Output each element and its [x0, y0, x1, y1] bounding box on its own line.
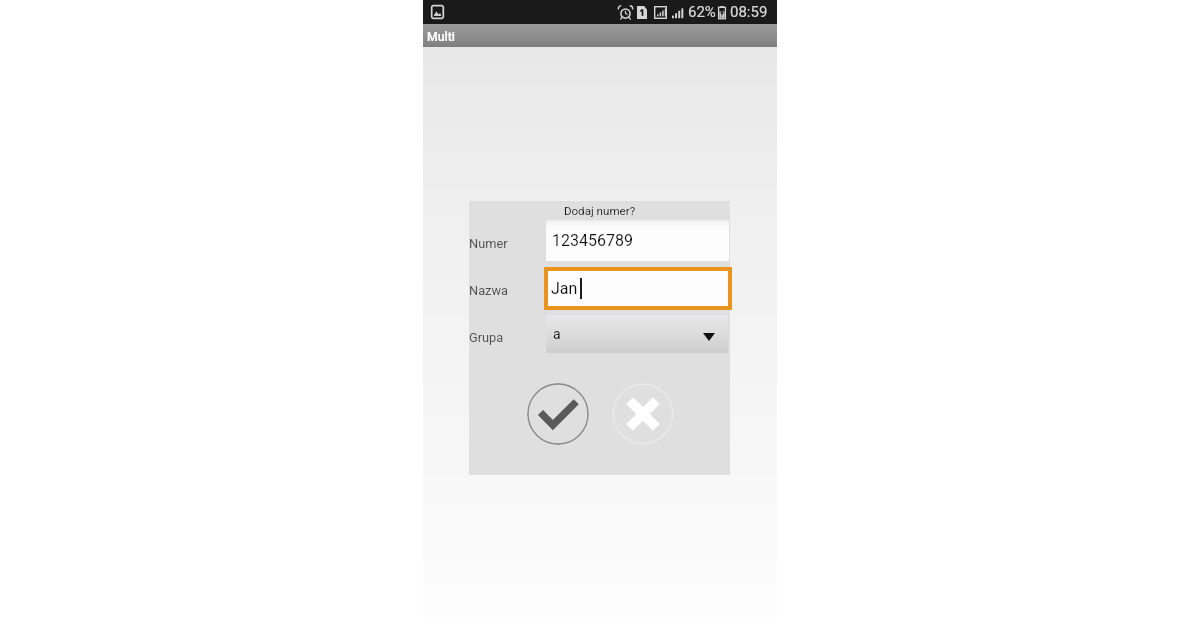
staticText: Jan: [551, 279, 578, 298]
button[interactable]: Accept: [527, 383, 589, 445]
staticText: Numer: [469, 236, 508, 251]
staticText: a: [553, 326, 561, 342]
staticText: 62%: [688, 3, 716, 21]
staticText: Nazwa: [469, 283, 509, 298]
button[interactable]: Cancel: [612, 383, 674, 445]
button[interactable]: a: [546, 315, 728, 353]
button[interactable]: Multi: [423, 24, 777, 47]
staticText: 08:59: [730, 3, 768, 21]
button[interactable]: Jan: [544, 267, 732, 310]
button[interactable]: 123456789: [546, 220, 729, 261]
staticText: Dodaj numer?: [469, 204, 730, 218]
staticText: 123456789: [552, 231, 633, 250]
staticText: Multi: [427, 30, 455, 44]
staticText: Grupa: [469, 330, 504, 345]
